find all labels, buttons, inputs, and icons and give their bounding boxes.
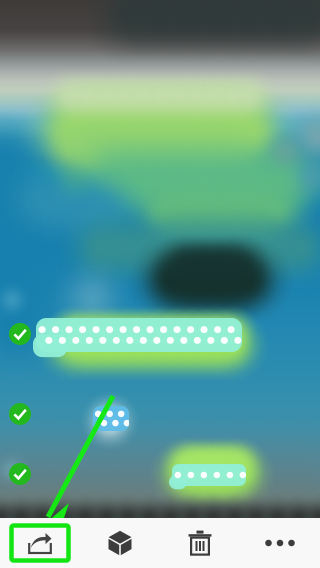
button[interactable]: Delete: [160, 530, 240, 556]
button[interactable]: Share: [0, 525, 80, 560]
button[interactable]: More: [240, 530, 320, 556]
button[interactable]: Objects: [80, 530, 160, 556]
